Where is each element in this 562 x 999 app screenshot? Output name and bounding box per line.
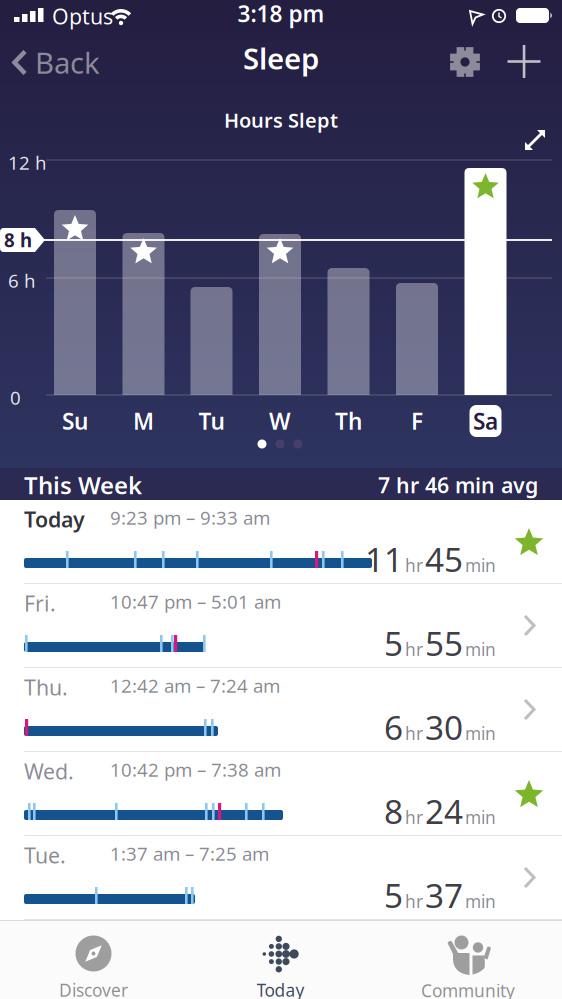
staticText: Thu. <box>24 673 68 701</box>
staticText: min <box>465 722 496 745</box>
staticText: min <box>465 890 496 913</box>
staticText: This Week <box>24 469 142 501</box>
staticText: 30 <box>425 705 463 749</box>
button[interactable]: Add sleep log <box>507 45 541 79</box>
staticText: hr <box>405 890 423 913</box>
staticText: 12:42 am – 7:24 am <box>110 673 280 698</box>
staticText: hr <box>405 806 423 829</box>
button[interactable]: Expand chart <box>523 128 549 154</box>
button[interactable]: Thu. <box>0 668 562 752</box>
button[interactable]: Fri. <box>0 584 562 668</box>
staticText: 12 h <box>8 150 47 175</box>
button[interactable]: Community <box>374 921 562 999</box>
staticText: Su <box>62 406 88 436</box>
staticText: 5 <box>384 873 403 917</box>
staticText: 3:18 pm <box>237 0 324 28</box>
staticText: min <box>465 806 496 829</box>
staticText: 0 <box>10 385 21 410</box>
staticText: Back <box>35 43 100 82</box>
staticText: 10:47 pm – 5:01 am <box>110 589 281 614</box>
staticText: 1:37 am – 7:25 am <box>110 841 269 866</box>
staticText: min <box>465 554 496 577</box>
staticText: W <box>269 406 291 436</box>
staticText: Today <box>24 505 85 533</box>
staticText: Community <box>421 979 515 999</box>
staticText: 55 <box>425 621 463 665</box>
staticText: Optus <box>52 2 113 30</box>
button[interactable]: Discover <box>0 921 187 999</box>
staticText: M <box>133 406 154 436</box>
staticText: 5 <box>384 621 403 665</box>
staticText: 7 hr 46 min avg <box>378 471 538 499</box>
staticText: F <box>411 406 423 436</box>
button[interactable]: Today <box>0 500 562 584</box>
staticText: 24 <box>425 789 463 833</box>
staticText: 37 <box>425 873 463 917</box>
button[interactable]: Settings <box>448 45 482 79</box>
staticText: hr <box>405 554 423 577</box>
staticText: Tu <box>198 406 224 436</box>
staticText: 6 h <box>8 268 36 293</box>
staticText: Hours Slept <box>224 107 338 133</box>
staticText: Today <box>256 978 304 999</box>
staticText: Th <box>335 406 362 436</box>
staticText: 11 <box>365 537 403 581</box>
button[interactable]: Today <box>187 921 374 999</box>
staticText: 8 h <box>4 228 32 252</box>
staticText: Fri. <box>24 589 56 617</box>
staticText: 8 <box>384 789 403 833</box>
button[interactable]: Back <box>12 43 100 82</box>
button[interactable]: Wed. <box>0 752 562 836</box>
staticText: hr <box>405 722 423 745</box>
staticText: 10:42 pm – 7:38 am <box>110 757 281 782</box>
staticText: Wed. <box>24 757 74 785</box>
staticText: 45 <box>425 537 463 581</box>
staticText: Discover <box>59 978 128 999</box>
staticText: Sa <box>473 406 498 436</box>
staticText: hr <box>405 638 423 661</box>
button[interactable]: Tue. <box>0 836 562 920</box>
staticText: 6 <box>384 705 403 749</box>
staticText: Sleep <box>243 38 319 77</box>
staticText: min <box>465 638 496 661</box>
staticText: 9:23 pm – 9:33 am <box>110 505 270 530</box>
staticText: Tue. <box>24 841 66 869</box>
